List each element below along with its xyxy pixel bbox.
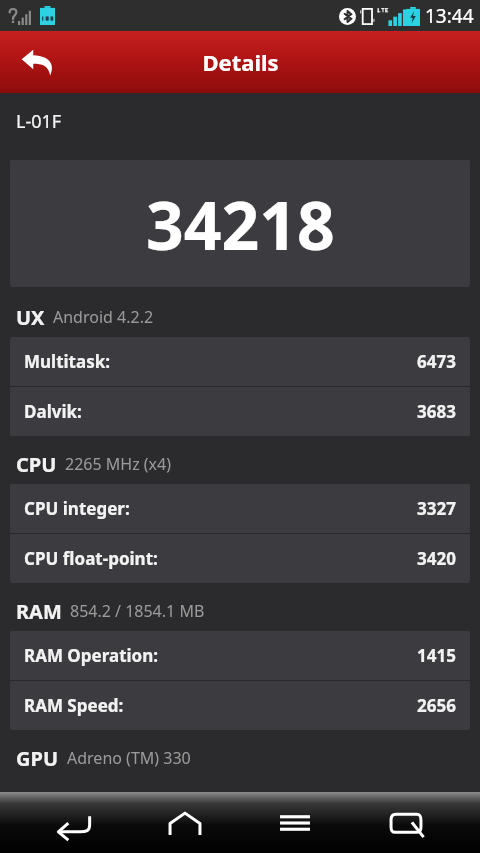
button[interactable]: Back [38, 795, 110, 851]
staticText: Android 4.2.2 [53, 306, 154, 328]
staticText: Details [202, 47, 279, 77]
staticText: 2265 MHz (x4) [65, 453, 172, 475]
button[interactable]: CPU integer: [10, 484, 470, 533]
button[interactable]: Menu [259, 795, 331, 851]
staticText: GPU [16, 745, 59, 772]
staticText: 3420 [417, 547, 456, 570]
staticText: RAM Speed: [24, 694, 124, 717]
button[interactable]: RAM Operation: [10, 631, 470, 680]
staticText: 854.2 / 1854.1 MB [70, 600, 205, 622]
button[interactable]: CPU float-point: [10, 534, 470, 583]
button[interactable]: Multitask: [10, 337, 470, 386]
staticText: Adreno (TM) 330 [67, 747, 191, 769]
staticText: UX [16, 304, 45, 331]
staticText: Multitask: [24, 350, 111, 373]
staticText: L-01F [16, 109, 62, 134]
button[interactable]: Back [10, 37, 66, 87]
staticText: 6473 [417, 350, 456, 373]
staticText: RAM Operation: [24, 644, 159, 667]
staticText: Dalvik: [24, 400, 82, 423]
button[interactable]: Recent apps [370, 795, 442, 851]
button[interactable]: Home [149, 795, 221, 851]
staticText: 3683 [417, 400, 456, 423]
staticText: 3327 [417, 497, 456, 520]
staticText: 34218 [146, 179, 335, 269]
staticText: 1415 [417, 644, 456, 667]
button[interactable]: Dalvik: [10, 387, 470, 436]
staticText: RAM [16, 598, 62, 625]
staticText: CPU float-point: [24, 547, 158, 570]
staticText: CPU integer: [24, 497, 130, 520]
staticText: 13:44 [425, 3, 474, 29]
staticText: 2656 [417, 694, 456, 717]
button[interactable]: RAM Speed: [10, 681, 470, 730]
staticText: CPU [16, 451, 57, 478]
